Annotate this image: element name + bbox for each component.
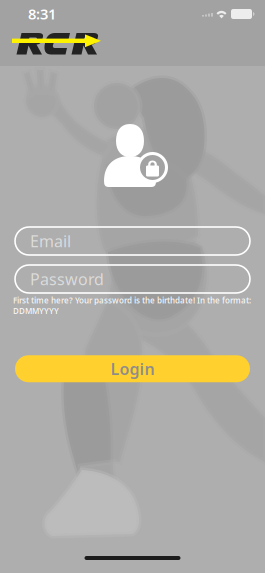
staticText: Login — [110, 358, 154, 379]
button[interactable]: Email — [15, 227, 250, 255]
button[interactable]: Login — [15, 355, 250, 382]
staticText: Email — [30, 230, 71, 252]
staticText: First time here? Your password is the bi… — [13, 295, 251, 316]
staticText: 8:31 — [28, 4, 56, 23]
button[interactable]: Password — [15, 265, 250, 293]
staticText: Password — [30, 268, 104, 290]
